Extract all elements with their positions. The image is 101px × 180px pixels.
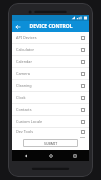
button[interactable]: Home [40,150,62,161]
staticText: API Devices [16,35,81,40]
button[interactable]: Recent apps [64,150,86,161]
staticText: Clock [16,95,81,100]
staticText: Contacts [16,107,81,112]
button[interactable]: Calendar [12,56,89,67]
button[interactable]: Dev Tools [12,128,89,135]
staticText: Calendar [16,59,81,64]
button[interactable]: Contacts [12,104,89,115]
staticText: DEVICE CONTROL [29,23,73,30]
staticText: Custom Locale [16,119,81,124]
staticText: Cleaning [16,83,81,88]
button[interactable]: Clock [12,92,89,103]
staticText: Calculator [16,47,81,52]
button[interactable]: Navigate up [12,21,23,32]
button[interactable]: Camera [12,68,89,79]
button[interactable]: API Devices [12,32,89,43]
staticText: Camera [16,71,81,76]
button[interactable]: Custom Locale [12,116,89,127]
staticText: Dev Tools [16,129,81,134]
button[interactable]: Cleaning [12,80,89,91]
button[interactable]: Calculator [12,44,89,55]
button[interactable]: SUBMIT [23,139,78,147]
button[interactable]: Back [15,150,37,161]
staticText: SUBMIT [44,141,58,146]
